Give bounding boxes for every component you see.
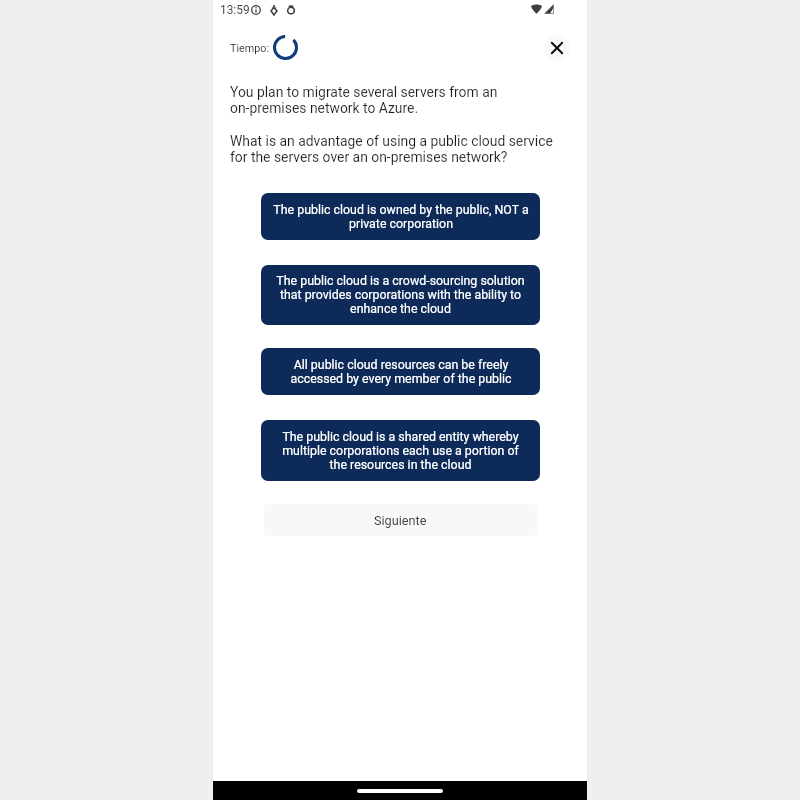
staticText: The public cloud is owned by the public,…: [273, 203, 529, 231]
button[interactable]: The public cloud is owned by the public,…: [261, 193, 540, 240]
staticText: 13:59: [220, 3, 250, 17]
staticText: What is an advantage of using a public c…: [230, 133, 553, 165]
staticText: The public cloud is a shared entity wher…: [282, 430, 519, 472]
staticText: The public cloud is a crowd-sourcing sol…: [276, 274, 525, 316]
staticText: Siguiente: [374, 513, 427, 528]
button[interactable]: All public cloud resources can be freely…: [261, 348, 540, 395]
button[interactable]: Siguiente: [264, 504, 537, 536]
staticText: All public cloud resources can be freely…: [290, 358, 512, 386]
button[interactable]: The public cloud is a crowd-sourcing sol…: [261, 265, 540, 325]
staticText: Tiempo:: [230, 42, 270, 55]
button[interactable]: The public cloud is a shared entity wher…: [261, 420, 540, 481]
staticText: You plan to migrate several servers from…: [230, 84, 498, 116]
button[interactable]: Close: [540, 31, 574, 65]
